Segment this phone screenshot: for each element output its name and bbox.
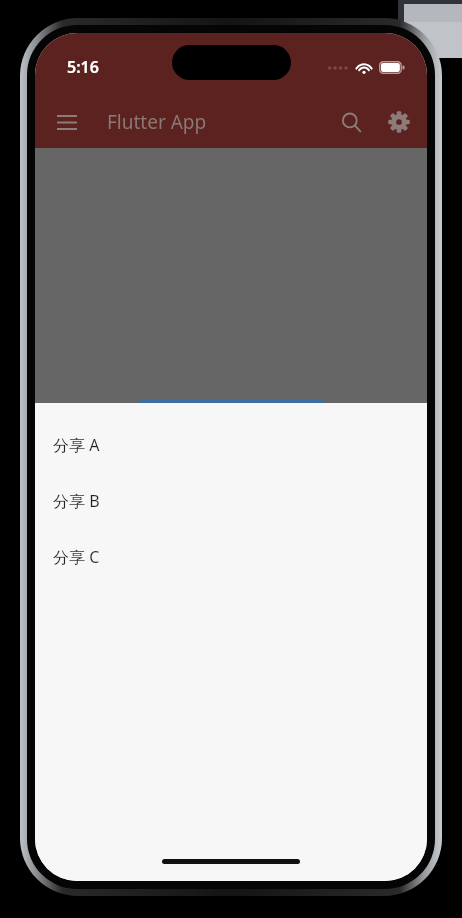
staticText: 分享 A: [53, 434, 100, 456]
staticText: 分享 B: [53, 490, 100, 512]
button[interactable]: 分享 A: [35, 417, 427, 473]
button[interactable]: Open navigation menu: [43, 98, 91, 146]
button[interactable]: Search: [327, 98, 375, 146]
button[interactable]: 分享 C: [35, 529, 427, 585]
button[interactable]: Settings: [375, 98, 423, 146]
staticText: Flutter App: [107, 109, 207, 135]
button[interactable]: 分享 B: [35, 473, 427, 529]
staticText: 分享 C: [53, 546, 100, 568]
staticText: 5:16: [67, 56, 99, 78]
